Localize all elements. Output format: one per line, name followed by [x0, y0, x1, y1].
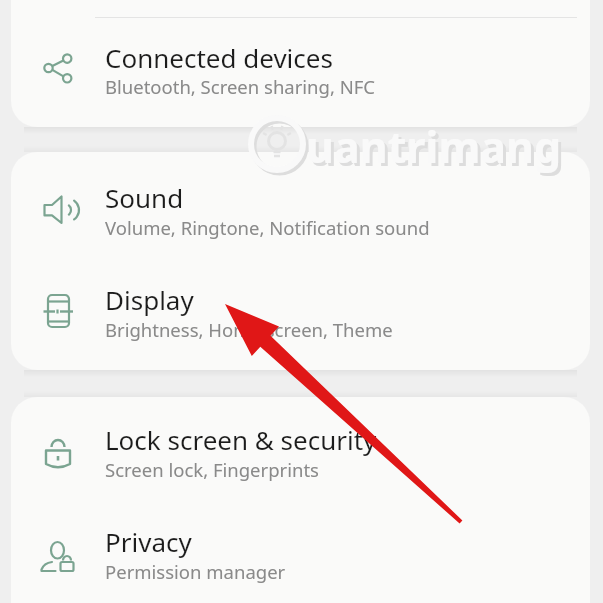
- staticText: Bluetooth, Screen sharing, NFC: [105, 74, 376, 99]
- staticText: Permission manager: [105, 559, 286, 584]
- button[interactable]: Display: [11, 261, 590, 370]
- button[interactable]: Lock screen & security: [11, 402, 590, 504]
- staticText: Screen lock, Fingerprints: [105, 457, 319, 482]
- staticText: Connected devices: [105, 40, 333, 75]
- button[interactable]: Privacy: [11, 504, 590, 603]
- staticText: uantrimang: [309, 120, 565, 179]
- staticText: Sound: [105, 180, 184, 215]
- staticText: Brightness, Home screen, Theme: [105, 317, 393, 342]
- button[interactable]: Sound: [11, 152, 590, 261]
- staticText: Privacy: [105, 524, 192, 559]
- staticText: Lock screen & security: [105, 422, 377, 457]
- button[interactable]: Connected devices: [11, 17, 590, 127]
- staticText: uantrimang: [306, 117, 562, 176]
- staticText: Volume, Ringtone, Notification sound: [105, 215, 430, 240]
- staticText: Display: [105, 282, 194, 317]
